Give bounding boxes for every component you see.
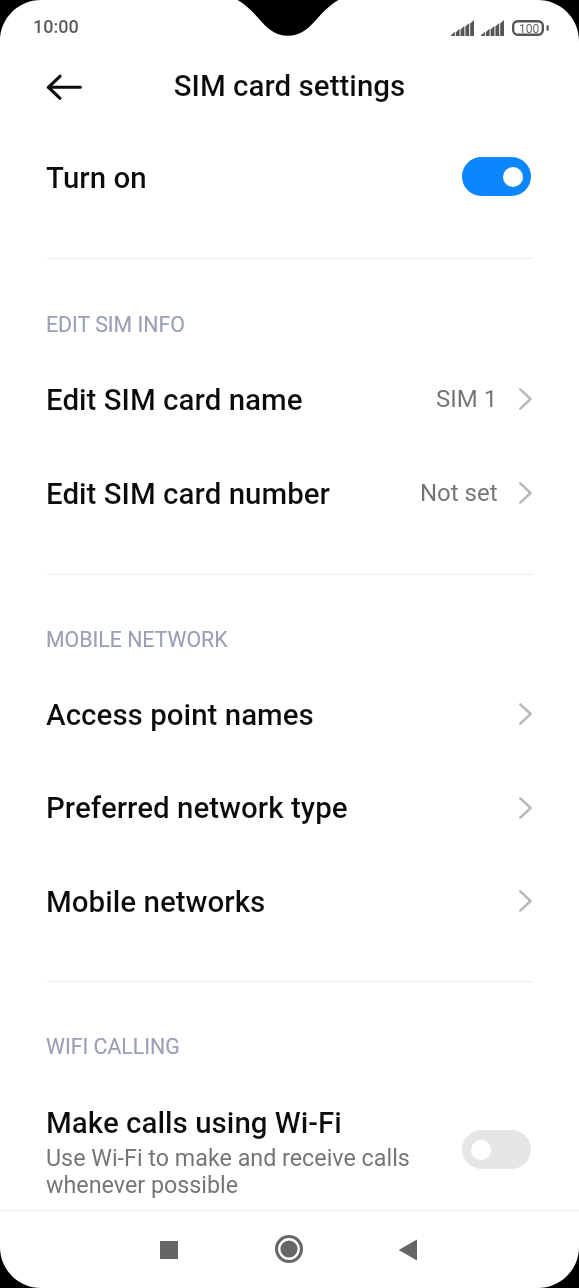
staticText: EDIT SIM INFO [46, 312, 185, 337]
button[interactable]: Turn on [462, 1130, 531, 1169]
button[interactable]: Navigate up [40, 63, 89, 112]
button[interactable]: Recent apps [139, 1220, 199, 1280]
staticText: Mobile networks [46, 885, 266, 920]
button[interactable]: Turn off [462, 157, 531, 196]
staticText: WIFI CALLING [46, 1034, 180, 1059]
staticText: 10:00 [33, 16, 79, 37]
button[interactable]: Home [259, 1219, 319, 1279]
staticText: SIM 1 [436, 385, 498, 413]
staticText: Preferred network type [46, 791, 348, 826]
staticText: SIM card settings [0, 69, 579, 104]
staticText: Make calls using Wi-Fi [46, 1106, 342, 1141]
staticText: whenever possible [46, 1171, 239, 1198]
button[interactable] [0, 454, 579, 532]
staticText: Edit SIM card name [46, 383, 303, 418]
staticText: Turn on [46, 161, 147, 196]
button[interactable] [0, 360, 579, 438]
button[interactable] [0, 769, 579, 847]
button[interactable] [0, 862, 579, 940]
staticText: Not set [420, 479, 498, 507]
button[interactable]: Back [397, 1238, 417, 1261]
staticText: Access point names [46, 698, 314, 733]
button[interactable] [0, 675, 579, 753]
staticText: MOBILE NETWORK [46, 627, 228, 652]
staticText: Edit SIM card number [46, 477, 330, 512]
button[interactable] [0, 140, 579, 218]
staticText: 100 [519, 22, 540, 36]
staticText: Use Wi-Fi to make and receive calls [46, 1144, 410, 1171]
button[interactable] [0, 1092, 579, 1202]
